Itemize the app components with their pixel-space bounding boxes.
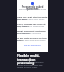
staticText: Can I change my plan at any time? (17, 22, 48, 28)
staticText: All major cards accepted (17, 32, 42, 35)
staticText: Everything you need to know (17, 8, 48, 11)
staticText: Flexible multi- transaction processing (17, 54, 48, 65)
button[interactable]: Is my data secure on this site? (17, 36, 48, 43)
button[interactable]: How do I get started with the app? (17, 15, 48, 22)
staticText: Frequently asked questions (17, 5, 48, 11)
button[interactable]: Can I change my plan at any time? (17, 22, 48, 29)
button[interactable]: See all questions (24, 44, 41, 47)
staticText: How do I get started with the app? (17, 15, 48, 21)
staticText: Is my data secure on this site? (17, 36, 48, 42)
staticText: What payment methods are taken? (17, 29, 48, 35)
staticText: We use bank level encryption (17, 39, 46, 42)
staticText: Move money across borders quickly and sa… (17, 61, 48, 68)
staticText: Yes, upgrade or downgrade (17, 25, 45, 28)
button[interactable]: What payment methods are taken? (17, 29, 48, 36)
staticText: Just sign up with your email (17, 18, 45, 21)
